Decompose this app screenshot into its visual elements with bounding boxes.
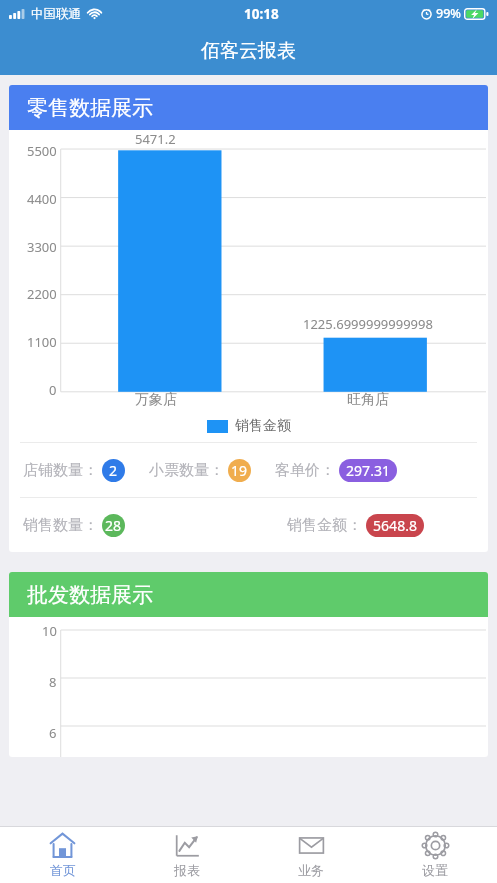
button[interactable]: 业务 <box>249 827 373 883</box>
staticText: 5500 <box>27 142 57 160</box>
button[interactable]: 批发数据展示 <box>9 572 488 757</box>
staticText: 0 <box>49 381 57 399</box>
staticText: 6 <box>49 724 57 742</box>
staticText: 报表 <box>174 862 200 878</box>
staticText: 8 <box>49 673 57 691</box>
staticText: 19 <box>231 461 248 480</box>
staticText: 2 <box>109 461 118 480</box>
staticText: 批发数据展示 <box>27 582 153 608</box>
staticText: 销售金额： <box>287 516 362 535</box>
staticText: 首页 <box>50 862 76 878</box>
staticText: 销售金额 <box>235 417 291 435</box>
staticText: 客单价： <box>275 461 335 480</box>
staticText: 佰客云报表 <box>201 39 296 63</box>
staticText: 5648.8 <box>373 516 417 535</box>
staticText: 设置 <box>422 862 448 878</box>
staticText: 5471.2 <box>135 130 176 148</box>
staticText: 28 <box>105 516 122 535</box>
staticText: 小票数量： <box>149 461 224 480</box>
staticText: 零售数据展示 <box>27 95 153 121</box>
staticText: 旺角店 <box>347 391 389 409</box>
staticText: 99% <box>436 5 461 22</box>
staticText: 业务 <box>298 862 324 878</box>
staticText: 万象店 <box>135 391 177 409</box>
staticText: 销售数量： <box>23 516 98 535</box>
staticText: 3300 <box>27 238 57 256</box>
button[interactable]: 报表 <box>125 827 249 883</box>
staticText: 1100 <box>27 333 57 351</box>
staticText: 店铺数量： <box>23 461 98 480</box>
staticText: 中国联通 <box>31 6 81 22</box>
button[interactable]: 零售数据展示 <box>9 85 488 552</box>
button[interactable]: 首页 <box>0 827 125 883</box>
button[interactable]: 设置 <box>373 827 497 883</box>
staticText: 10 <box>42 622 57 640</box>
staticText: 4400 <box>27 190 57 208</box>
staticText: 297.31 <box>346 461 390 480</box>
staticText: 2200 <box>27 285 57 303</box>
staticText: 1225.6999999999998 <box>303 315 433 333</box>
staticText: 10:18 <box>244 5 279 23</box>
